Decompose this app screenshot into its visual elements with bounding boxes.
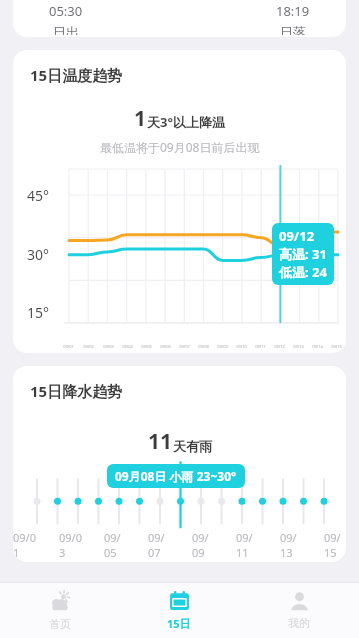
- staticText: 09/09: [217, 344, 228, 349]
- staticText: 09/14: [312, 344, 323, 349]
- staticText: 天有雨: [173, 438, 212, 454]
- staticText: 我的: [288, 616, 310, 630]
- staticText: 1: [134, 104, 147, 133]
- staticText: 15日降水趋势: [30, 381, 123, 401]
- staticText: 15日: [167, 616, 191, 631]
- staticText: 09/02: [83, 344, 94, 349]
- button[interactable]: 15日降水趋势: [13, 366, 346, 562]
- staticText: 09/03: [103, 344, 114, 349]
- staticText: 天3°以上降温: [147, 113, 225, 131]
- staticText: 最低温将于09月08日前后出现: [100, 139, 260, 155]
- button[interactable]: 15日温度趋势: [13, 50, 346, 353]
- staticText: 09/13: [280, 530, 302, 560]
- staticText: 首页: [49, 617, 71, 631]
- staticText: 09/05: [104, 530, 126, 560]
- button[interactable]: 首页: [0, 583, 119, 638]
- staticText: 15°: [27, 303, 50, 322]
- staticText: 09/15: [324, 530, 346, 560]
- staticText: 09/07: [179, 344, 190, 349]
- staticText: 09/07: [148, 530, 170, 560]
- staticText: 09/01: [63, 344, 74, 349]
- staticText: 09/15: [331, 344, 342, 349]
- staticText: 日落: [280, 24, 306, 35]
- staticText: 18:19: [276, 2, 310, 20]
- staticText: 低温: 24: [279, 263, 327, 281]
- staticText: 09/06: [160, 344, 171, 349]
- staticText: 09/12: [279, 227, 315, 245]
- staticText: 日出: [53, 24, 79, 35]
- button[interactable]: 05:30: [13, 0, 346, 37]
- staticText: 09/04: [122, 344, 133, 349]
- staticText: 09/13: [293, 344, 304, 349]
- staticText: 45°: [27, 186, 50, 205]
- staticText: 09/12: [274, 344, 285, 349]
- staticText: 11: [148, 427, 173, 456]
- staticText: 09/05: [141, 344, 152, 349]
- staticText: 30°: [27, 245, 50, 264]
- button[interactable]: 我的: [239, 583, 359, 638]
- staticText: 09/03: [59, 530, 82, 560]
- staticText: 09/09: [192, 530, 214, 560]
- staticText: 09/11: [255, 344, 266, 349]
- staticText: 09月08日 小雨 23~30°: [115, 468, 237, 484]
- button[interactable]: 15日: [119, 583, 239, 638]
- staticText: 05:30: [49, 2, 83, 20]
- staticText: 09/10: [236, 344, 247, 349]
- staticText: 09/01: [13, 530, 36, 560]
- staticText: 09/11: [236, 530, 258, 560]
- staticText: 高温: 31: [279, 245, 327, 263]
- staticText: 09/08: [198, 344, 209, 349]
- staticText: 15日温度趋势: [30, 65, 123, 85]
